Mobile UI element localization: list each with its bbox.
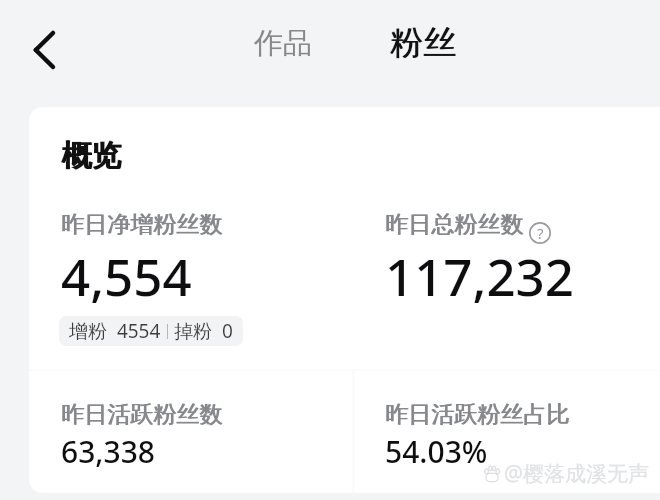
button[interactable]: Info [526,219,554,247]
button[interactable]: 增粉 4554 [59,316,243,346]
button[interactable]: 粉丝 [380,14,466,72]
staticText: 昨日净增粉丝数 [61,210,222,239]
staticText: 昨日活跃粉丝数 [61,400,222,429]
button[interactable]: Back [12,17,78,83]
staticText: 昨日活跃粉丝占比 [386,400,570,429]
staticText: 掉粉 0 [174,318,233,344]
staticText: 粉丝 [390,22,456,64]
staticText: 昨日活跃粉丝占比 [385,400,569,429]
staticText: 粉丝 [391,22,457,64]
staticText: 增粉 4554 [69,318,161,344]
staticText: 昨日总粉丝数 [385,210,523,239]
staticText: 概览 [62,137,122,175]
staticText: 54.03% [385,431,488,472]
button[interactable]: 昨日活跃粉丝数 [37,390,337,490]
staticText: 作品 [254,25,312,62]
staticText: 昨日总粉丝数 [386,210,524,239]
staticText: 昨日净增粉丝数 [62,210,223,239]
button[interactable]: 昨日净增粉丝数 [37,202,337,357]
button[interactable]: 昨日活跃粉丝占比 [361,390,660,490]
staticText: 昨日活跃粉丝数 [62,400,223,429]
button[interactable]: 昨日总粉丝数 [361,202,660,312]
staticText: 63,338 [61,431,155,472]
staticText: @樱落成溪无声 [504,459,649,488]
button[interactable]: 作品 [244,17,322,70]
staticText: 概览 [61,137,121,175]
staticText: 4,554 [61,241,192,310]
staticText: 117,232 [385,241,574,310]
staticText: ? [537,223,544,243]
